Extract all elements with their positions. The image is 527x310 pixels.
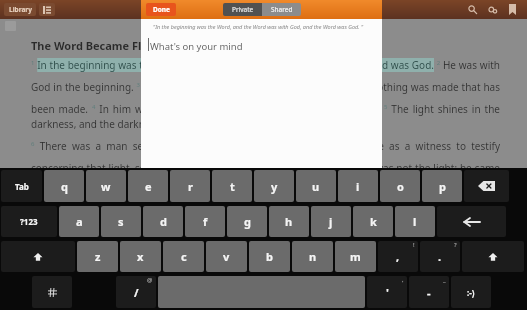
button[interactable]: d bbox=[143, 206, 183, 237]
button[interactable]: h bbox=[269, 206, 309, 237]
button[interactable]: Notes bbox=[485, 2, 500, 17]
button[interactable]: Shared bbox=[262, 3, 301, 16]
button[interactable]: . bbox=[420, 241, 460, 272]
staticText: . bbox=[438, 249, 442, 264]
staticText: Tab bbox=[15, 181, 29, 192]
button[interactable]: :-) bbox=[451, 276, 491, 308]
button[interactable]: j bbox=[311, 206, 351, 237]
staticText: ? bbox=[454, 241, 457, 249]
staticText: c bbox=[181, 249, 187, 264]
button[interactable]: Tab bbox=[1, 170, 42, 202]
staticText: a bbox=[76, 214, 83, 229]
button[interactable]: Enter bbox=[437, 206, 506, 237]
button[interactable]: k bbox=[353, 206, 393, 237]
staticText: s bbox=[118, 214, 124, 229]
staticText: r bbox=[188, 179, 193, 194]
staticText: k bbox=[370, 214, 377, 229]
staticText: @ bbox=[147, 276, 153, 284]
staticText: p bbox=[439, 179, 446, 194]
button[interactable]: , bbox=[378, 241, 418, 272]
staticText: , bbox=[402, 276, 404, 284]
staticText: The Word Became Flesh bbox=[31, 38, 161, 53]
staticText: b bbox=[266, 249, 273, 264]
button[interactable]: r bbox=[170, 170, 210, 202]
staticText: / bbox=[134, 285, 139, 300]
staticText: e bbox=[145, 179, 152, 194]
button[interactable]: f bbox=[185, 206, 225, 237]
staticText: t bbox=[230, 179, 235, 194]
button[interactable]: y bbox=[254, 170, 294, 202]
staticText: What's on your mind bbox=[150, 40, 243, 53]
staticText: , bbox=[396, 249, 400, 264]
staticText: h bbox=[285, 214, 293, 229]
staticText: y bbox=[271, 179, 278, 194]
staticText: z bbox=[95, 249, 101, 264]
staticText: x bbox=[137, 249, 144, 264]
staticText: :-) bbox=[467, 287, 475, 298]
button[interactable]: e bbox=[128, 170, 168, 202]
staticText: ! bbox=[413, 241, 415, 249]
staticText: "In the beginning was the Word, and the … bbox=[153, 23, 364, 30]
button[interactable]: w bbox=[86, 170, 126, 202]
staticText: 1 In the beginning was the Word, and the… bbox=[31, 58, 500, 168]
button[interactable]: z bbox=[77, 241, 118, 272]
button[interactable]: o bbox=[380, 170, 420, 202]
button[interactable]: ?123 bbox=[1, 206, 57, 237]
staticText: m bbox=[350, 249, 361, 264]
button[interactable]: a bbox=[59, 206, 99, 237]
button[interactable]: Input method bbox=[32, 276, 72, 308]
button[interactable]: Shift bbox=[462, 241, 524, 272]
button[interactable]: q bbox=[44, 170, 84, 202]
button[interactable]: t bbox=[212, 170, 252, 202]
staticText: n bbox=[309, 249, 317, 264]
button[interactable]: n bbox=[292, 241, 333, 272]
staticText: Done bbox=[153, 5, 170, 14]
button[interactable]: s bbox=[101, 206, 141, 237]
button[interactable]: - bbox=[409, 276, 449, 308]
button[interactable]: m bbox=[335, 241, 376, 272]
button[interactable]: ' bbox=[367, 276, 407, 308]
staticText: i bbox=[356, 179, 360, 194]
staticText: ' bbox=[386, 285, 389, 300]
button[interactable]: Library bbox=[4, 3, 36, 16]
button[interactable]: v bbox=[206, 241, 247, 272]
button[interactable]: c bbox=[163, 241, 204, 272]
button[interactable]: Shift bbox=[1, 241, 75, 272]
staticText: - bbox=[427, 285, 431, 300]
staticText: w bbox=[101, 179, 111, 194]
staticText: ?123 bbox=[20, 216, 38, 227]
staticText: j bbox=[329, 214, 333, 229]
staticText: o bbox=[397, 179, 404, 194]
button[interactable]: u bbox=[296, 170, 336, 202]
button[interactable]: x bbox=[120, 241, 161, 272]
button[interactable]: Bookmark bbox=[505, 2, 520, 17]
button[interactable]: / bbox=[116, 276, 156, 308]
button[interactable]: p bbox=[422, 170, 462, 202]
button[interactable]: g bbox=[227, 206, 267, 237]
staticText: Private bbox=[232, 5, 254, 14]
button[interactable]: Private bbox=[223, 3, 262, 16]
staticText: g bbox=[244, 214, 251, 229]
staticText: f bbox=[203, 214, 208, 229]
staticText: d bbox=[160, 214, 167, 229]
staticText: q bbox=[61, 179, 68, 194]
staticText: _ bbox=[443, 276, 446, 284]
button[interactable]: Done bbox=[146, 3, 176, 16]
staticText: l bbox=[413, 214, 417, 229]
button[interactable]: b bbox=[249, 241, 290, 272]
button[interactable]: l bbox=[395, 206, 435, 237]
staticText: v bbox=[223, 249, 230, 264]
staticText: Shared bbox=[271, 5, 293, 14]
button[interactable]: Contents bbox=[39, 3, 55, 16]
staticText: Library bbox=[9, 5, 32, 14]
staticText: u bbox=[312, 179, 320, 194]
button[interactable]: Backspace bbox=[464, 170, 509, 202]
button[interactable]: i bbox=[338, 170, 378, 202]
button[interactable]: Search bbox=[465, 2, 480, 17]
